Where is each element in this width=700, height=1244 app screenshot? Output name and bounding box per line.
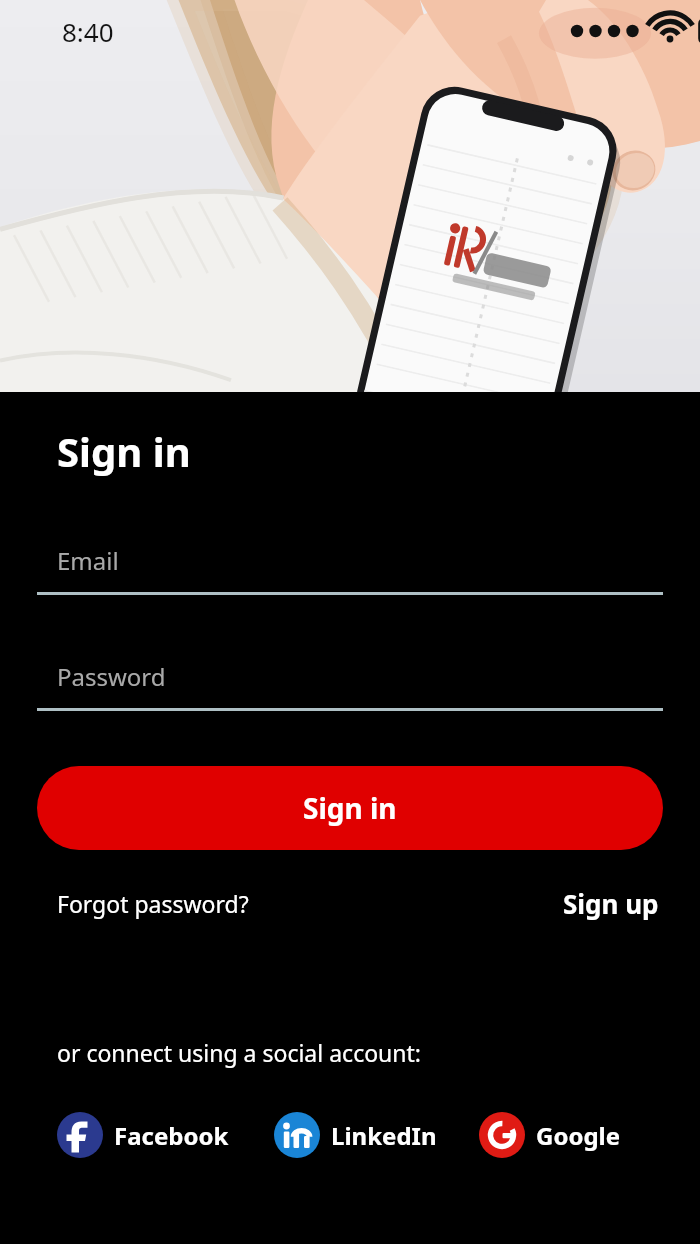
staticText: Facebook — [114, 1119, 229, 1152]
staticText: Sign in — [303, 789, 397, 827]
staticText: 8:40 — [62, 14, 114, 49]
staticText: Sign in — [57, 424, 191, 478]
button[interactable]: Forgot password? — [37, 880, 257, 927]
staticText: Google — [536, 1119, 621, 1152]
button[interactable]: Sign in with Facebook — [57, 1112, 229, 1158]
button[interactable]: Sign in with LinkedIn — [274, 1112, 437, 1158]
button[interactable]: Sign up — [555, 878, 663, 929]
staticText: or connect using a social account: — [57, 1037, 421, 1068]
button[interactable]: Password — [37, 654, 663, 711]
staticText: Password — [57, 660, 166, 693]
button[interactable]: Sign in — [37, 766, 663, 850]
staticText: Forgot password? — [57, 888, 249, 919]
staticText: LinkedIn — [331, 1119, 437, 1152]
button[interactable]: Email — [37, 538, 663, 595]
staticText: Sign up — [563, 886, 659, 921]
button[interactable]: Sign in with Google — [479, 1112, 621, 1158]
staticText: Email — [57, 544, 119, 577]
